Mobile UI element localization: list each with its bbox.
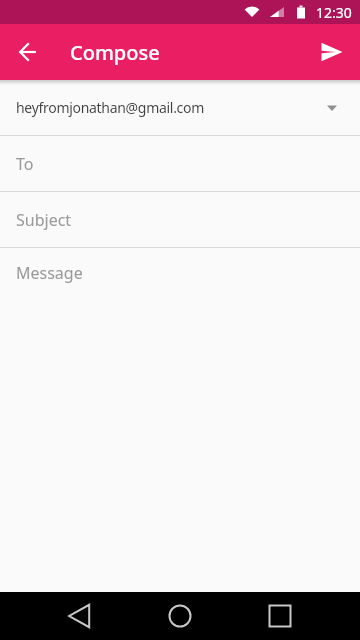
staticText: To bbox=[16, 153, 34, 175]
button[interactable] bbox=[156, 592, 204, 640]
button[interactable] bbox=[256, 592, 304, 640]
button[interactable]: To bbox=[0, 136, 360, 191]
button[interactable]: Subject bbox=[0, 192, 360, 247]
staticText: Compose bbox=[70, 39, 160, 66]
staticText: heyfromjonathan@gmail.com bbox=[16, 98, 204, 117]
button[interactable] bbox=[56, 592, 104, 640]
staticText: Message bbox=[16, 262, 83, 284]
button[interactable]: heyfromjonathan@gmail.com bbox=[0, 80, 360, 135]
button[interactable] bbox=[304, 24, 360, 80]
button[interactable]: Message bbox=[0, 248, 360, 592]
staticText: Subject bbox=[16, 209, 72, 231]
button[interactable] bbox=[0, 24, 56, 80]
staticText: 12:30 bbox=[316, 3, 352, 22]
